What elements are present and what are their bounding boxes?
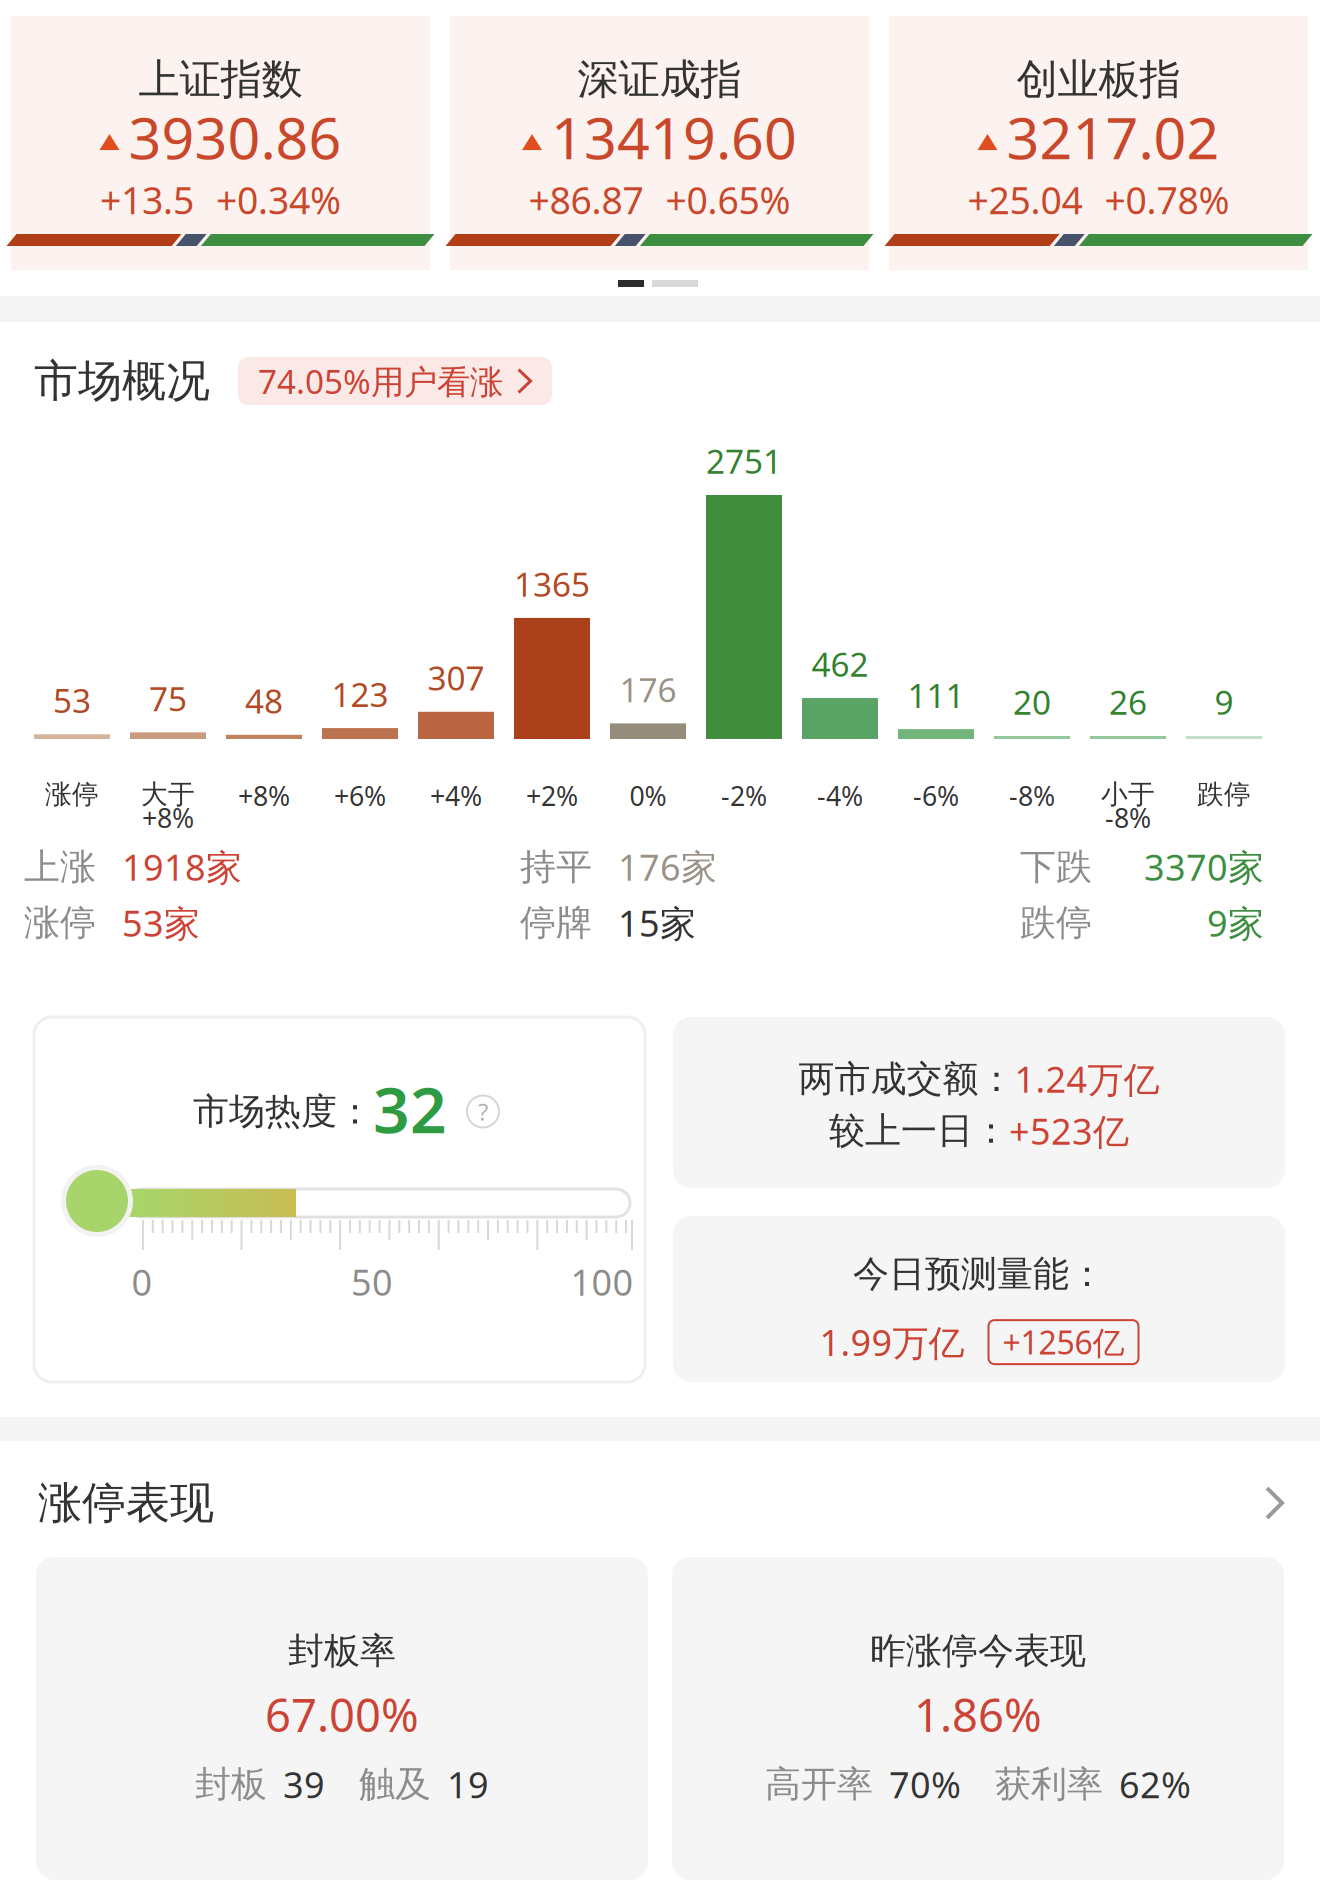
staticText: 176	[619, 667, 676, 711]
staticText: 较上一日：	[829, 1109, 1009, 1153]
staticText: 上证指数	[138, 54, 302, 105]
staticText: 创业板指	[1016, 54, 1180, 105]
staticText: -2%	[721, 778, 767, 813]
staticText: ?	[478, 1096, 488, 1127]
staticText: +13.5	[100, 175, 194, 225]
staticText: 大于	[141, 778, 195, 811]
staticText: 176家	[618, 843, 717, 891]
staticText: 2751	[706, 439, 782, 483]
staticText: 26	[1109, 680, 1147, 724]
staticText: 市场概况	[34, 354, 210, 408]
staticText: +523亿	[1009, 1107, 1129, 1155]
staticText: +0.34%	[216, 175, 341, 225]
button[interactable]: 封板率	[36, 1557, 648, 1880]
staticText: 75	[149, 676, 187, 720]
staticText: 39	[283, 1760, 325, 1808]
staticText: 跌停	[1020, 901, 1092, 945]
staticText: 48	[245, 678, 283, 723]
staticText: 32	[373, 1066, 447, 1151]
staticText: +8%	[238, 778, 290, 813]
staticText: 15家	[618, 899, 696, 947]
staticText: 3217.02	[1006, 99, 1219, 175]
staticText: 触及	[359, 1762, 431, 1806]
staticText: 下跌	[1020, 845, 1092, 889]
staticText: +2%	[526, 778, 578, 813]
staticText: -4%	[817, 778, 863, 813]
staticText: 1365	[514, 562, 590, 606]
staticText: 1918家	[122, 843, 242, 891]
button[interactable]: 创业板指	[889, 16, 1308, 270]
staticText: 20	[1013, 680, 1051, 724]
staticText: 100	[570, 1258, 633, 1306]
staticText: 昨涨停今表现	[870, 1629, 1086, 1673]
staticText: 67.00%	[265, 1684, 419, 1744]
button[interactable]: 74.05%用户看涨	[238, 357, 552, 405]
staticText: +6%	[334, 778, 386, 813]
staticText: 3930.86	[128, 99, 341, 175]
staticText: 涨停表现	[38, 1476, 214, 1530]
staticText: +4%	[430, 778, 482, 813]
staticText: 123	[331, 672, 388, 716]
staticText: +86.87	[528, 175, 643, 225]
staticText: 19	[447, 1760, 489, 1808]
staticText: 市场热度：	[193, 1089, 373, 1134]
staticText: 74.05%用户看涨	[258, 359, 503, 403]
staticText: 462	[811, 642, 868, 686]
staticText: 9家	[1207, 899, 1264, 947]
staticText: 上涨	[24, 845, 96, 889]
staticText: 0	[131, 1258, 152, 1306]
staticText: 涨停	[45, 778, 99, 811]
staticText: 跌停	[1197, 778, 1251, 811]
button[interactable]: 上证指数	[11, 16, 430, 270]
staticText: 307	[427, 655, 484, 700]
staticText: 停牌	[520, 901, 592, 945]
staticText: +0.78%	[1104, 175, 1229, 225]
staticText: 封板	[195, 1762, 267, 1806]
staticText: 深证成指	[577, 54, 741, 105]
staticText: 封板率	[288, 1629, 396, 1673]
staticText: 今日预测量能：	[853, 1252, 1105, 1296]
staticText: +1256亿	[1002, 1321, 1124, 1363]
staticText: 70%	[889, 1760, 961, 1808]
staticText: +8%	[142, 800, 194, 835]
staticText: 53家	[122, 899, 200, 947]
staticText: +0.65%	[665, 175, 790, 225]
staticText: 0%	[629, 778, 666, 813]
staticText: 111	[907, 673, 964, 717]
staticText: 1.24万亿	[1014, 1055, 1159, 1103]
staticText: 50	[351, 1258, 393, 1306]
staticText: 53	[53, 678, 91, 722]
button[interactable]: 涨停表现	[38, 1468, 1284, 1538]
staticText: 两市成交额：	[798, 1057, 1014, 1101]
staticText: 小于	[1101, 778, 1155, 811]
staticText: 持平	[520, 845, 592, 889]
staticText: -6%	[913, 778, 959, 813]
staticText: 9	[1214, 680, 1233, 724]
staticText: 62%	[1119, 1760, 1191, 1808]
staticText: -8%	[1009, 778, 1055, 813]
staticText: 13419.60	[551, 99, 797, 175]
staticText: 1.86%	[914, 1684, 1042, 1744]
staticText: 涨停	[24, 901, 96, 945]
button[interactable]: 昨涨停今表现	[672, 1557, 1284, 1880]
button[interactable]: 深证成指	[450, 16, 869, 270]
staticText: 3370家	[1144, 843, 1264, 891]
staticText: +25.04	[967, 175, 1082, 225]
staticText: 高开率	[765, 1762, 873, 1806]
staticText: 获利率	[995, 1762, 1103, 1806]
staticText: -8%	[1105, 800, 1151, 835]
staticText: 1.99万亿	[819, 1318, 964, 1366]
